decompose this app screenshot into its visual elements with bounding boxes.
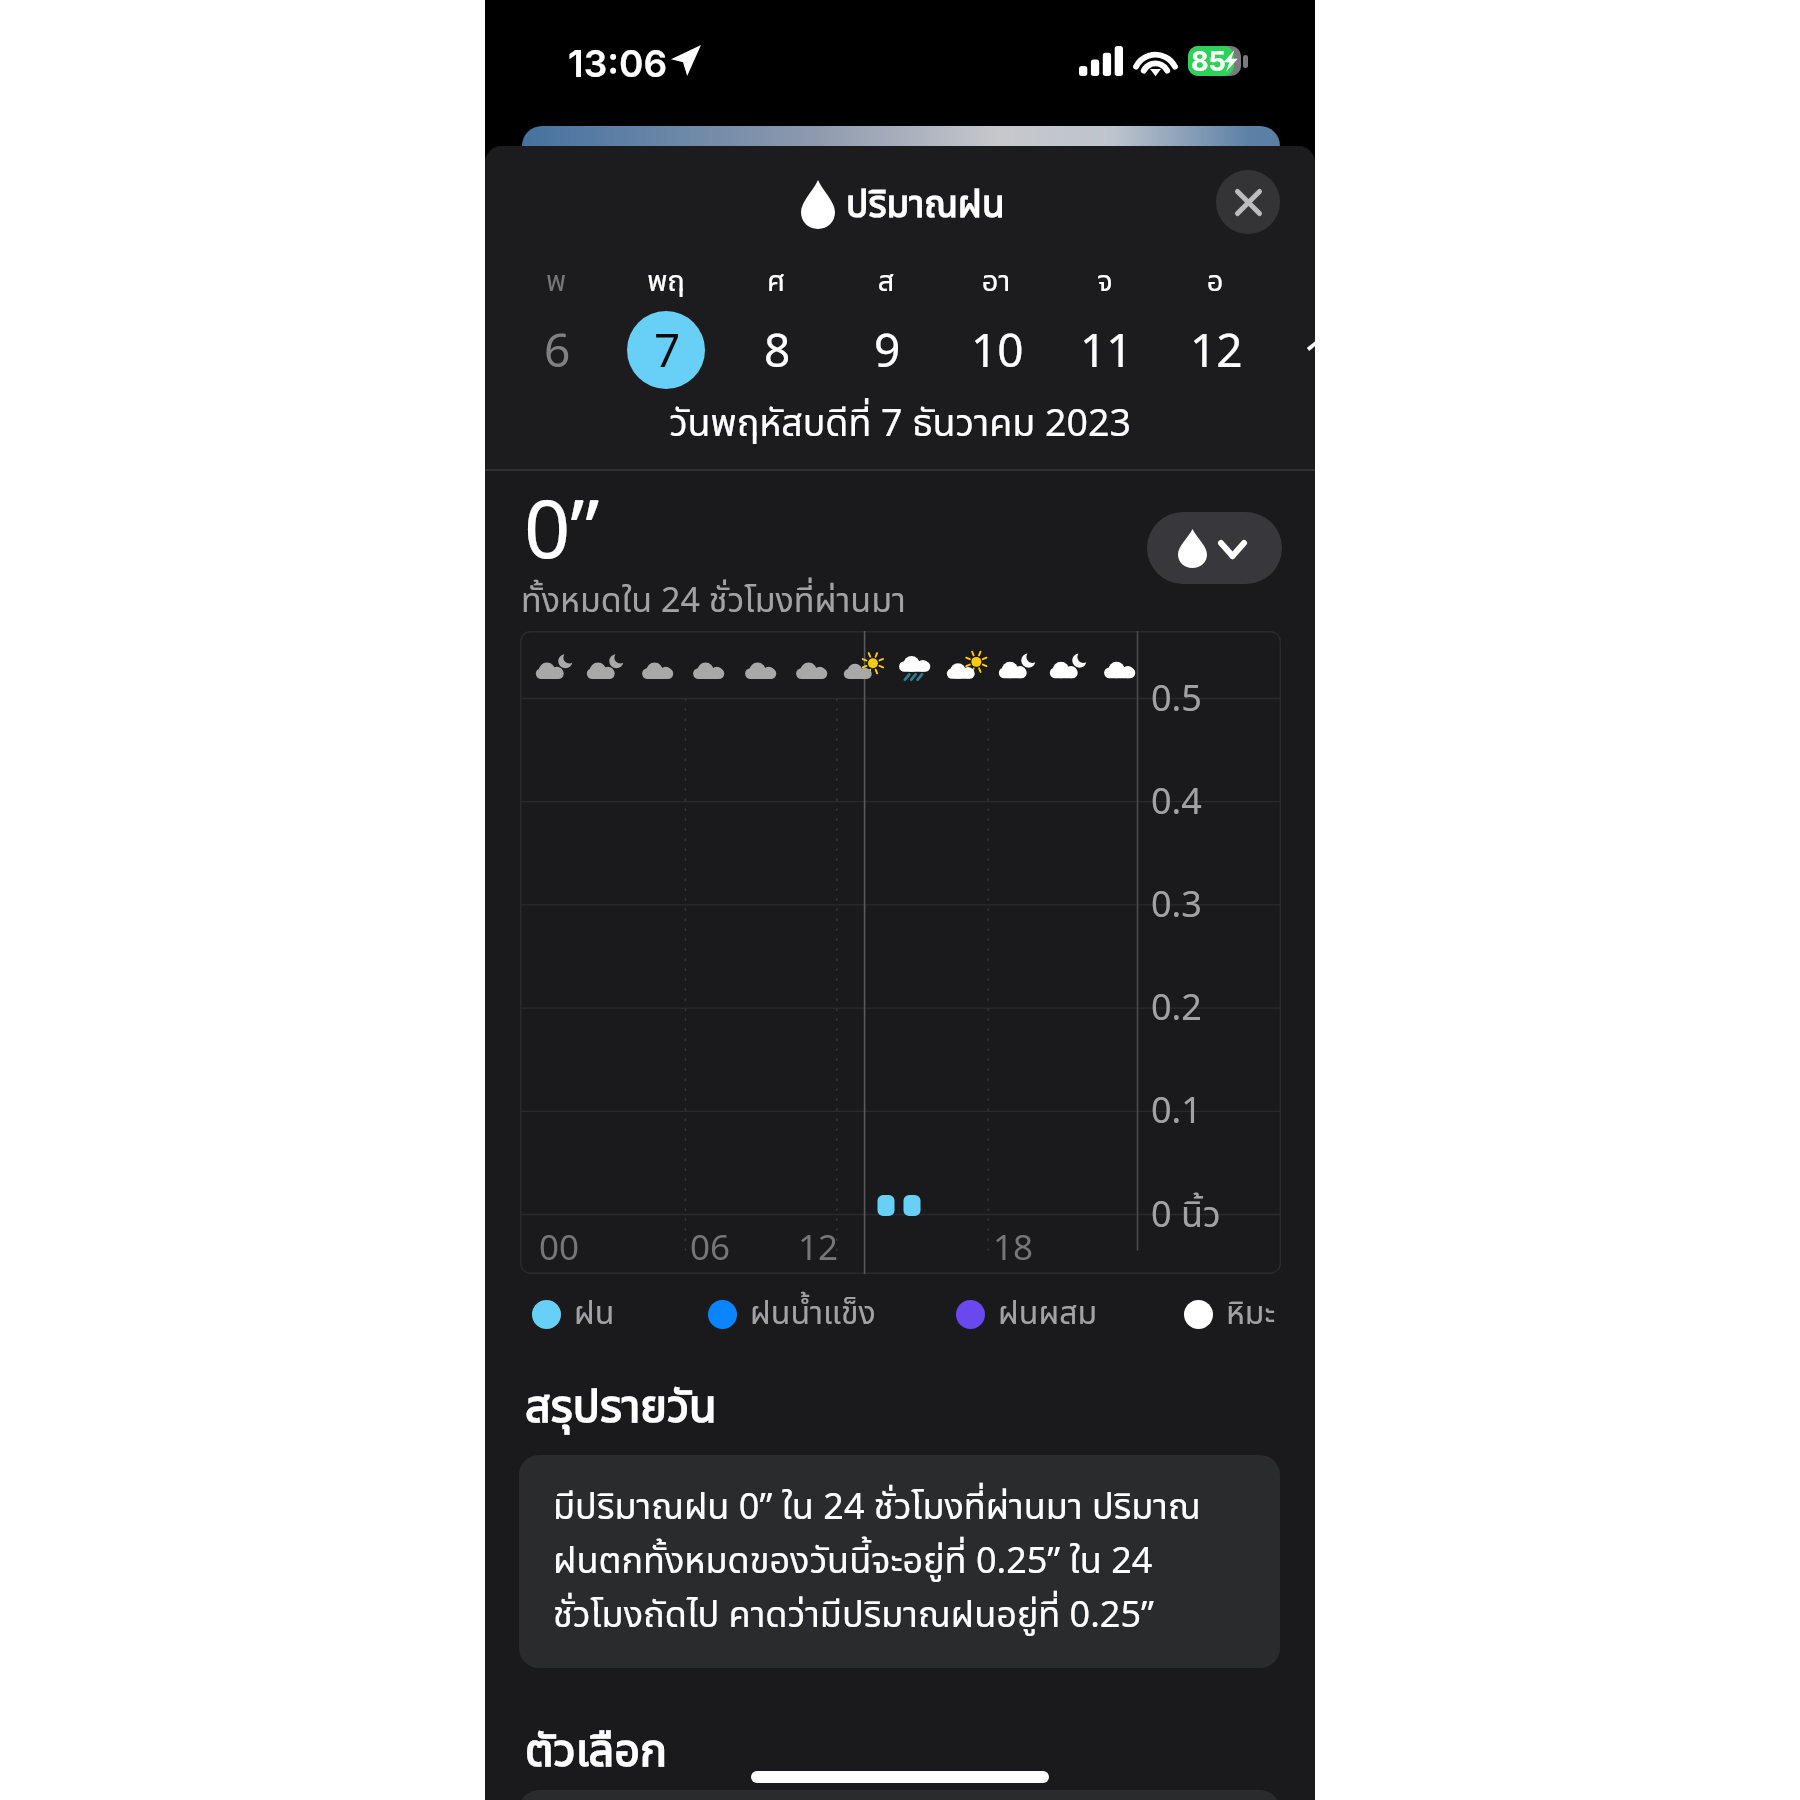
button[interactable]: หิมะ: [1184, 1288, 1276, 1340]
staticText: หิมะ: [1226, 1290, 1276, 1338]
staticText: ฝนน้ำแข็ง: [750, 1290, 876, 1338]
staticText: มีปริมาณฝน 0” ใน 24 ชั่วโมงที่ผ่านมา ปริ…: [553, 1481, 1218, 1643]
staticText: 06: [690, 1223, 731, 1276]
staticText: 00: [539, 1223, 580, 1276]
staticText: 8: [764, 318, 791, 388]
staticText: 0”: [524, 472, 600, 594]
staticText: 12: [1190, 318, 1243, 388]
staticText: ฝน: [574, 1290, 615, 1338]
staticText: 6: [544, 318, 571, 388]
staticText: 13:06: [568, 41, 668, 86]
staticText: ทั้งหมดใน 24 ชั่วโมงที่ผ่านมา: [521, 576, 906, 627]
staticText: 18: [993, 1223, 1034, 1276]
button[interactable]: อ: [1163, 256, 1267, 386]
button[interactable]: ฝนผสม: [956, 1288, 1098, 1340]
staticText: อา: [944, 260, 1048, 304]
staticText: 7: [654, 318, 681, 388]
button[interactable]: จ: [1053, 256, 1157, 386]
button[interactable]: ฝน: [532, 1288, 615, 1340]
button[interactable]: พฤ: [614, 256, 718, 386]
staticText: ศ: [724, 260, 828, 304]
button[interactable]: อา: [944, 256, 1048, 386]
button[interactable]: Close: [1216, 170, 1280, 234]
staticText: 0.1: [1151, 1085, 1202, 1137]
button[interactable]: ศ: [724, 256, 828, 386]
staticText: 0 นิ้ว: [1151, 1189, 1221, 1241]
staticText: อ: [1163, 260, 1267, 304]
button[interactable]: ฝนน้ำแข็ง: [708, 1288, 876, 1340]
staticText: 0.3: [1151, 879, 1202, 931]
staticText: 0.5: [1151, 673, 1202, 725]
staticText: 9: [874, 318, 901, 388]
staticText: ฝนผสม: [998, 1290, 1098, 1338]
staticText: 1: [1303, 325, 1315, 395]
staticText: 85: [1191, 46, 1226, 75]
staticText: 12: [798, 1223, 839, 1276]
staticText: ตัวเลือก: [525, 1718, 668, 1786]
staticText: พ: [504, 260, 608, 304]
staticText: ส: [834, 260, 938, 304]
button[interactable]: Choose metric: [1147, 512, 1282, 584]
staticText: พฤ: [614, 260, 718, 304]
staticText: วันพฤหัสบดีที่ 7 ธันวาคม 2023: [485, 396, 1315, 453]
staticText: ปริมาณฝน: [846, 178, 1005, 234]
button[interactable]: พ: [504, 256, 608, 386]
staticText: 0.4: [1151, 776, 1202, 828]
staticText: 10: [971, 318, 1024, 388]
staticText: 0.2: [1151, 982, 1202, 1034]
staticText: สรุปรายวัน: [525, 1374, 717, 1442]
staticText: 11: [1080, 318, 1133, 388]
staticText: จ: [1053, 260, 1157, 304]
button[interactable]: ส: [834, 256, 938, 386]
